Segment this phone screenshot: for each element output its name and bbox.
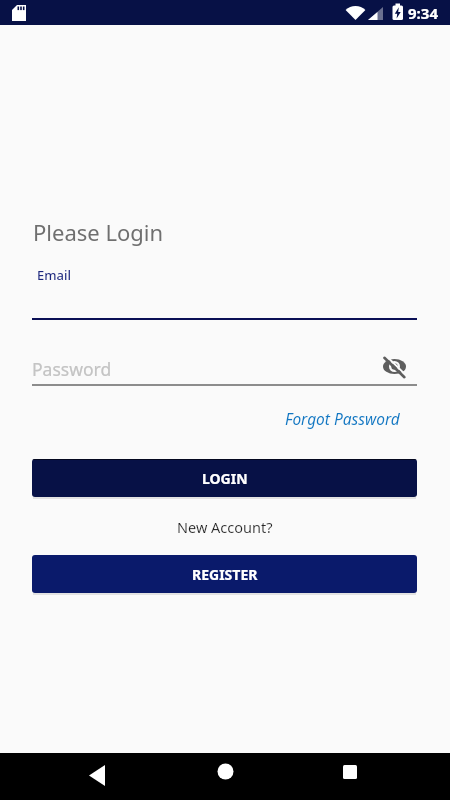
button[interactable] — [336, 758, 363, 785]
button[interactable]: LOGIN — [32, 459, 417, 497]
staticText: Email — [37, 266, 72, 284]
staticText: 9:34 — [408, 3, 438, 23]
staticText: Password — [32, 357, 112, 381]
staticText: Please Login — [33, 217, 164, 247]
button[interactable] — [382, 355, 407, 380]
staticText: REGISTER — [192, 565, 258, 584]
button[interactable]: Forgot Password — [285, 408, 400, 429]
button[interactable] — [85, 762, 111, 788]
staticText: LOGIN — [202, 469, 248, 488]
button[interactable] — [212, 758, 239, 785]
staticText: New Account? — [177, 517, 273, 537]
button[interactable]: REGISTER — [32, 555, 417, 593]
